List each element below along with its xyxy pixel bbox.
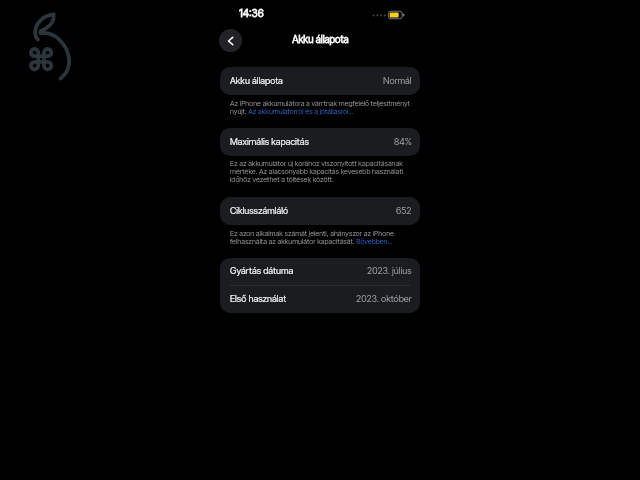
staticText: 2023. október (356, 293, 412, 304)
staticText: 652 (396, 205, 412, 216)
button[interactable]: Akku állapota (220, 67, 420, 95)
staticText: 14:36 (239, 7, 264, 20)
staticText: Ez az akkumulátor új korához viszonyítot… (230, 159, 413, 184)
button[interactable]: Maximális kapacitás (220, 128, 420, 156)
staticText: Az iPhone akkumulátora a várrtnak megfel… (230, 99, 413, 116)
staticText: Akku állapota (292, 34, 349, 46)
staticText: Ciklusszámláló (230, 205, 289, 216)
staticText: Maximális kapacitás (230, 136, 309, 147)
button[interactable]: Első használat (220, 286, 420, 313)
staticText: 84% (394, 136, 412, 147)
staticText: 2023. július (367, 265, 412, 276)
button[interactable]: Ciklusszámláló (220, 197, 420, 225)
staticText: Normál (383, 75, 412, 86)
button[interactable]: Gyártás dátuma (220, 258, 420, 285)
staticText: Első használat (230, 293, 287, 304)
staticText: Gyártás dátuma (230, 265, 294, 276)
staticText: Ez azon alkalmak számát jelenti, ahánysz… (230, 229, 413, 246)
staticText: Akku állapota (230, 75, 283, 86)
button[interactable]: Vissza (219, 29, 242, 52)
